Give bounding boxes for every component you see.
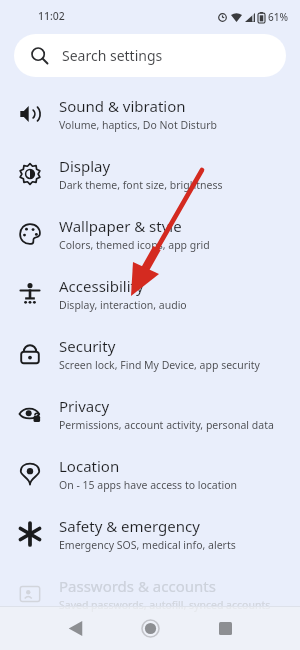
button[interactable]: Home bbox=[133, 611, 167, 645]
button[interactable]: Display bbox=[0, 144, 300, 204]
staticText: Display, interaction, audio bbox=[59, 298, 187, 312]
staticText: Emergency SOS, medical info, alerts bbox=[59, 538, 236, 552]
staticText: Permissions, account activity, personal … bbox=[59, 418, 274, 432]
button[interactable]: Sound & vibration bbox=[0, 84, 300, 144]
button[interactable]: Safety & emergency bbox=[0, 504, 300, 564]
button[interactable]: Recent apps bbox=[208, 611, 242, 645]
staticText: Wallpaper & style bbox=[59, 216, 182, 236]
staticText: 11:02 bbox=[38, 9, 65, 23]
staticText: Volume, haptics, Do Not Disturb bbox=[59, 118, 217, 132]
button[interactable]: Search settings bbox=[14, 34, 286, 77]
button[interactable]: Privacy bbox=[0, 384, 300, 444]
staticText: Security bbox=[59, 336, 116, 356]
button[interactable]: Wallpaper & style bbox=[0, 204, 300, 264]
staticText: Sound & vibration bbox=[59, 96, 186, 116]
staticText: Saved passwords, autofill, synced accoun… bbox=[59, 598, 271, 612]
button[interactable]: Security bbox=[0, 324, 300, 384]
button[interactable]: Accessibility bbox=[0, 264, 300, 324]
staticText: On - 15 apps have access to location bbox=[59, 478, 238, 492]
staticText: Display bbox=[59, 156, 111, 176]
staticText: 61% bbox=[268, 10, 288, 24]
staticText: Search settings bbox=[62, 46, 163, 65]
staticText: Passwords & accounts bbox=[59, 576, 216, 596]
staticText: Colors, themed icons, app grid bbox=[59, 238, 210, 252]
button[interactable]: Location bbox=[0, 444, 300, 504]
staticText: Safety & emergency bbox=[59, 516, 200, 536]
staticText: Location bbox=[59, 456, 120, 476]
button[interactable]: Back bbox=[58, 611, 92, 645]
staticText: Screen lock, Find My Device, app securit… bbox=[59, 358, 260, 372]
staticText: Privacy bbox=[59, 396, 110, 416]
staticText: Dark theme, font size, brightness bbox=[59, 178, 223, 192]
staticText: Accessibility bbox=[59, 276, 144, 296]
button[interactable]: Passwords & accounts bbox=[0, 564, 300, 624]
